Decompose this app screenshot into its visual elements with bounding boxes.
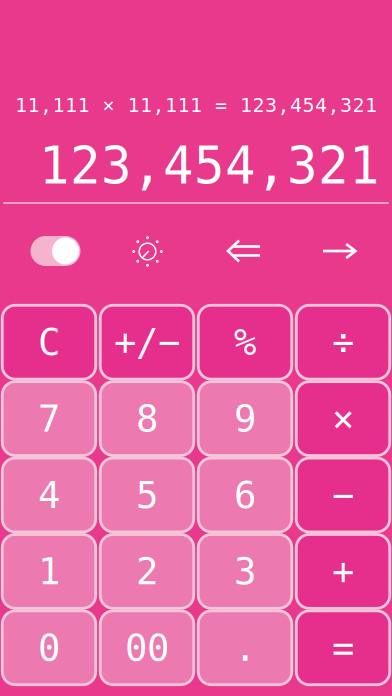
button[interactable]: Brightness: [114, 223, 180, 279]
button[interactable]: %: [196, 304, 294, 380]
button[interactable]: 9: [196, 380, 294, 457]
staticText: =: [332, 627, 354, 669]
staticText: .: [234, 627, 256, 669]
staticText: 8: [136, 397, 158, 440]
button[interactable]: 3: [196, 533, 294, 610]
staticText: 2: [136, 550, 158, 593]
button[interactable]: 0: [0, 610, 98, 686]
staticText: 123,454,321: [39, 137, 380, 195]
staticText: 4: [38, 474, 60, 516]
button[interactable]: Forward: [307, 223, 373, 279]
button[interactable]: −: [294, 457, 392, 533]
staticText: 3: [234, 550, 256, 593]
staticText: %: [234, 321, 256, 363]
button[interactable]: 4: [0, 457, 98, 533]
staticText: ×: [332, 397, 354, 440]
button[interactable]: 5: [98, 457, 196, 533]
button[interactable]: 1: [0, 533, 98, 610]
staticText: 9: [234, 397, 256, 440]
button[interactable]: .: [196, 610, 294, 686]
button[interactable]: ÷: [294, 304, 392, 380]
staticText: 11,111 × 11,111 = 123,454,321: [15, 94, 377, 116]
staticText: 5: [136, 474, 158, 516]
button[interactable]: 00: [98, 610, 196, 686]
button[interactable]: 7: [0, 380, 98, 457]
button[interactable]: 8: [98, 380, 196, 457]
staticText: −: [332, 474, 354, 516]
button[interactable]: Sound on: [18, 223, 92, 279]
staticText: +: [332, 550, 354, 593]
staticText: +/−: [114, 321, 180, 363]
staticText: C: [38, 321, 60, 363]
staticText: ÷: [332, 321, 354, 363]
button[interactable]: ×: [294, 380, 392, 457]
button[interactable]: +: [294, 533, 392, 610]
staticText: 7: [38, 397, 60, 440]
button[interactable]: Backspace: [211, 223, 277, 279]
button[interactable]: 6: [196, 457, 294, 533]
staticText: 0: [38, 627, 60, 669]
staticText: 00: [125, 627, 169, 669]
button[interactable]: 2: [98, 533, 196, 610]
staticText: 6: [234, 474, 256, 516]
button[interactable]: +/−: [98, 304, 196, 380]
button[interactable]: =: [294, 610, 392, 686]
button[interactable]: C: [0, 304, 98, 380]
staticText: 1: [38, 550, 60, 593]
